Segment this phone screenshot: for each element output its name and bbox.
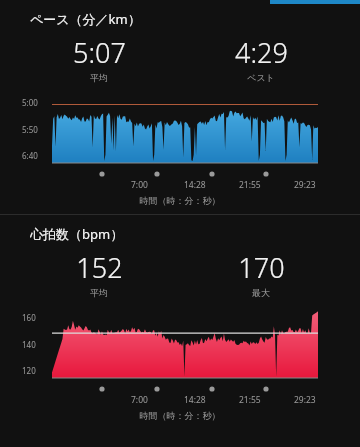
staticText: 平均 <box>90 72 108 83</box>
staticText: 平均 <box>90 287 108 298</box>
staticText: 120 <box>22 365 36 376</box>
staticText: 5:50 <box>22 124 38 135</box>
staticText: 160 <box>22 312 36 323</box>
staticText: 152 <box>76 249 123 286</box>
staticText: ベスト <box>247 72 275 83</box>
staticText: 時間（時：分：秒） <box>0 410 360 421</box>
staticText: 6:40 <box>22 150 38 161</box>
staticText: 170 <box>238 249 285 286</box>
staticText: 時間（時：分：秒） <box>0 195 360 206</box>
button[interactable]: 170 <box>180 249 342 298</box>
staticText: 5:07 <box>73 34 126 71</box>
staticText: 29:23 <box>294 179 316 191</box>
staticText: 7:00 <box>131 179 148 191</box>
staticText: 最大 <box>252 287 270 298</box>
button[interactable]: 5:07 <box>18 34 180 83</box>
staticText: 29:23 <box>294 394 316 406</box>
button[interactable]: 152 <box>18 249 180 298</box>
button[interactable]: 4:29 <box>180 34 342 83</box>
staticText: 140 <box>22 339 36 350</box>
staticText: 14:28 <box>184 179 206 191</box>
staticText: 14:28 <box>184 394 206 406</box>
staticText: ペース（分／km） <box>30 10 141 28</box>
staticText: 5:00 <box>22 97 38 108</box>
staticText: 4:29 <box>235 34 288 71</box>
staticText: 21:55 <box>239 394 261 406</box>
staticText: 7:00 <box>131 394 148 406</box>
staticText: 21:55 <box>239 179 261 191</box>
staticText: 心拍数（bpm） <box>30 225 124 243</box>
